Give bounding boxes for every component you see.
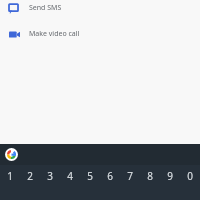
staticText: 7 [127, 169, 133, 183]
button[interactable]: 7 [120, 165, 140, 186]
button[interactable]: Google search [5, 148, 18, 161]
button[interactable]: 6 [100, 165, 120, 186]
staticText: Make video call [29, 29, 80, 39]
staticText: 8 [147, 169, 153, 183]
button[interactable]: 9 [160, 165, 180, 186]
button[interactable]: 0 [180, 165, 200, 186]
button[interactable]: 4 [60, 165, 80, 186]
staticText: 0 [187, 169, 193, 183]
staticText: 6 [107, 169, 113, 183]
staticText: 1 [7, 169, 13, 183]
button[interactable]: 8 [140, 165, 160, 186]
button[interactable]: 2 [20, 165, 40, 186]
staticText: Send SMS [29, 3, 62, 13]
staticText: 5 [87, 169, 93, 183]
staticText: 3 [47, 169, 53, 183]
button[interactable]: 3 [40, 165, 60, 186]
staticText: 4 [67, 169, 73, 183]
button[interactable]: Make video call [0, 27, 200, 40]
staticText: 9 [167, 169, 173, 183]
button[interactable]: Send SMS [0, 1, 200, 14]
staticText: 2 [27, 169, 33, 183]
button[interactable]: 1 [0, 165, 20, 186]
button[interactable]: 5 [80, 165, 100, 186]
